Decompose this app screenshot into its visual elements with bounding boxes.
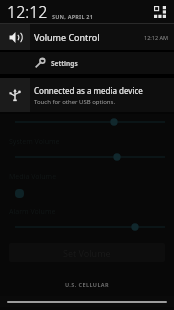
- button[interactable]: Volume: [0, 24, 174, 50]
- staticText: SUN, APRIL 21: [52, 13, 94, 20]
- other: Volume: [0, 24, 30, 50]
- button[interactable]: USB connection: [0, 78, 174, 112]
- staticText: Volume Control: [34, 31, 144, 43]
- staticText: Touch for other USB options.: [34, 98, 116, 106]
- staticText: 12:12: [7, 1, 48, 23]
- staticText: Settings: [51, 59, 78, 68]
- staticText: U.S. CELLULAR: [0, 281, 174, 288]
- staticText: 12:12 AM: [144, 34, 168, 41]
- other: USB connection: [0, 78, 30, 112]
- button[interactable]: Quick settings: [153, 5, 167, 19]
- button[interactable]: Close notification shade: [0, 296, 174, 307]
- staticText: Connected as a media device: [34, 85, 143, 96]
- button[interactable]: Settings: [0, 52, 174, 74]
